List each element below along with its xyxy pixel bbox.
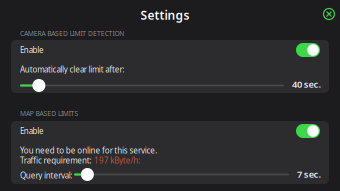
staticText: Traffic requirement:: [20, 155, 92, 166]
button[interactable]: Enable: [11, 121, 329, 141]
staticText: 197 kByte/h:: [94, 155, 140, 166]
staticText: Enable: [20, 45, 44, 55]
button[interactable]: Query interval: [74, 168, 289, 181]
button[interactable]: Close: [319, 4, 339, 24]
button[interactable]: Enable: [11, 40, 329, 60]
staticText: CAMERA BASED LIMIT DETECTION: [20, 29, 124, 38]
staticText: Automatically clear limit after:: [20, 64, 124, 75]
staticText: MAP BASED LIMITS: [20, 109, 78, 118]
staticText: Query interval:: [20, 170, 72, 181]
staticText: Settings: [140, 7, 189, 23]
staticText: 40 sec.: [292, 78, 321, 90]
button[interactable]: Automatically clear limit after: [20, 79, 284, 92]
staticText: 7 sec.: [297, 168, 321, 180]
staticText: You need to be online for this service.: [20, 145, 157, 156]
staticText: Enable: [20, 126, 44, 136]
